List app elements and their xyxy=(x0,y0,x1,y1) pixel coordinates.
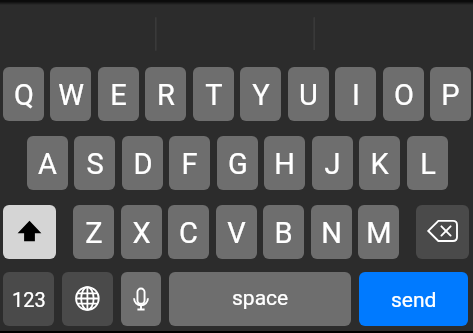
staticText: W xyxy=(58,78,84,112)
button[interactable]: J xyxy=(312,136,353,190)
button[interactable]: B xyxy=(263,205,304,259)
button[interactable]: Dictation xyxy=(121,272,161,326)
staticText: X xyxy=(132,216,151,250)
button[interactable]: E xyxy=(98,67,139,121)
staticText: M xyxy=(366,216,392,250)
button[interactable]: P xyxy=(430,67,471,121)
button[interactable]: I xyxy=(335,67,376,121)
button[interactable]: D xyxy=(122,136,163,190)
button[interactable]: A xyxy=(27,136,68,190)
staticText: S xyxy=(86,147,104,181)
button[interactable]: H xyxy=(264,136,305,190)
button[interactable]: K xyxy=(359,136,400,190)
button[interactable]: V xyxy=(216,205,257,259)
staticText: T xyxy=(205,78,223,112)
button[interactable]: M xyxy=(358,205,399,259)
button[interactable]: U xyxy=(288,67,329,121)
staticText: Y xyxy=(252,78,270,112)
staticText: H xyxy=(274,147,295,181)
staticText: J xyxy=(324,147,341,181)
button[interactable]: Z xyxy=(73,205,114,259)
staticText: send xyxy=(391,288,437,313)
button[interactable]: Shift xyxy=(3,205,56,259)
button[interactable]: C xyxy=(168,205,209,259)
staticText: space xyxy=(232,286,289,311)
button[interactable]: S xyxy=(74,136,115,190)
button[interactable]: Q xyxy=(3,67,44,121)
staticText: Q xyxy=(14,78,34,112)
button[interactable]: O xyxy=(383,67,424,121)
staticText: U xyxy=(299,78,318,112)
button[interactable]: 123 xyxy=(3,272,54,326)
staticText: A xyxy=(38,147,57,181)
staticText: F xyxy=(181,147,198,181)
staticText: E xyxy=(110,78,127,112)
staticText: D xyxy=(133,147,153,181)
staticText: 123 xyxy=(12,288,46,311)
staticText: Z xyxy=(85,216,103,250)
button[interactable]: Y xyxy=(240,67,281,121)
button[interactable]: G xyxy=(217,136,258,190)
staticText: O xyxy=(394,78,414,112)
button[interactable]: F xyxy=(169,136,210,190)
button[interactable]: T xyxy=(193,67,234,121)
button[interactable]: Switch keyboard language xyxy=(62,272,113,326)
button[interactable]: L xyxy=(407,136,448,190)
staticText: B xyxy=(274,216,293,250)
button[interactable]: N xyxy=(311,205,352,259)
staticText: R xyxy=(157,78,175,112)
staticText: I xyxy=(352,78,360,112)
staticText: C xyxy=(179,216,198,250)
button[interactable]: Backspace xyxy=(416,205,469,259)
button[interactable]: R xyxy=(145,67,186,121)
staticText: G xyxy=(228,147,248,181)
staticText: N xyxy=(321,216,342,250)
button[interactable]: space xyxy=(169,272,351,326)
staticText: V xyxy=(227,216,246,250)
staticText: P xyxy=(441,78,460,112)
staticText: L xyxy=(420,147,436,181)
button[interactable]: X xyxy=(121,205,162,259)
staticText: K xyxy=(370,147,389,181)
button[interactable]: W xyxy=(50,67,91,121)
button[interactable]: send xyxy=(359,272,468,326)
